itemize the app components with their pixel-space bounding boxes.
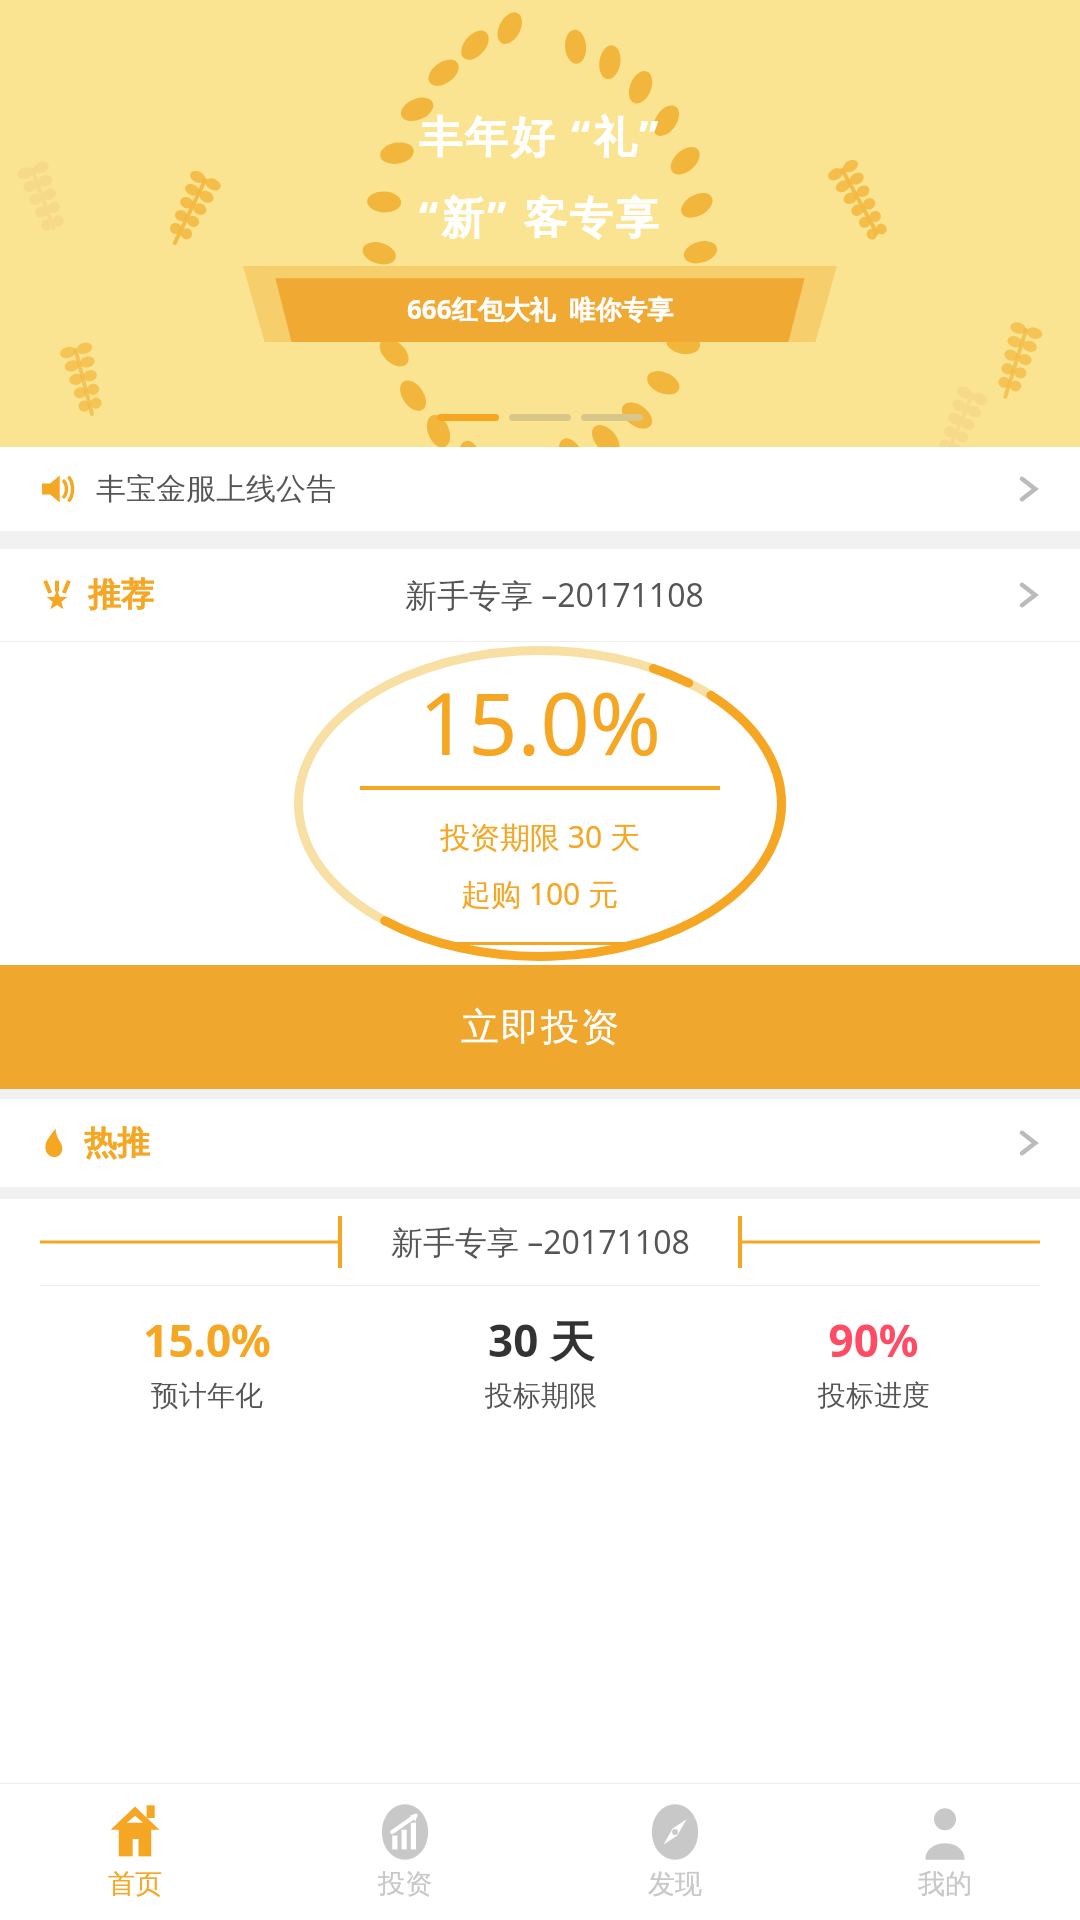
- staticText: 我的: [918, 1867, 972, 1901]
- button[interactable]: 立即投资: [0, 965, 1080, 1089]
- button[interactable]: 热推: [0, 1099, 1080, 1187]
- staticText: “新” 客专享: [419, 187, 662, 246]
- staticText: 90%: [828, 1310, 919, 1370]
- staticText: 起购 100 元: [461, 873, 619, 914]
- button[interactable]: 投资: [270, 1784, 540, 1920]
- staticText: 30 天: [488, 1310, 594, 1370]
- staticText: 15.0%: [419, 663, 662, 780]
- staticText: 首页: [108, 1867, 162, 1901]
- staticText: 热推: [84, 1122, 150, 1164]
- button[interactable]: 发现: [540, 1784, 810, 1920]
- staticText: 投资期限 30 天: [440, 816, 640, 857]
- staticText: 发现: [648, 1867, 702, 1901]
- staticText: 立即投资: [460, 1003, 620, 1051]
- staticText: 666红包大礼 唯你专享: [407, 291, 674, 327]
- staticText: 投标期限: [485, 1378, 597, 1413]
- staticText: 15.0%: [143, 1310, 271, 1370]
- button[interactable]: 新手专享 –20171108: [40, 1199, 1040, 1413]
- staticText: 新手专享 –20171108: [405, 573, 704, 617]
- button[interactable]: 丰年好 “礼”: [0, 0, 1080, 447]
- staticText: 新手专享 –20171108: [391, 1220, 690, 1264]
- button[interactable]: 我的: [810, 1784, 1080, 1920]
- staticText: 丰宝金服上线公告: [96, 470, 336, 508]
- staticText: 投标进度: [818, 1378, 930, 1413]
- staticText: 推荐: [88, 574, 154, 616]
- button[interactable]: 丰宝金服上线公告: [0, 447, 1080, 531]
- button[interactable]: 首页: [0, 1784, 270, 1920]
- staticText: 丰年好 “礼”: [419, 106, 662, 165]
- button[interactable]: 推荐: [0, 549, 1080, 641]
- staticText: 投资: [378, 1867, 432, 1901]
- staticText: 预计年化: [151, 1378, 263, 1413]
